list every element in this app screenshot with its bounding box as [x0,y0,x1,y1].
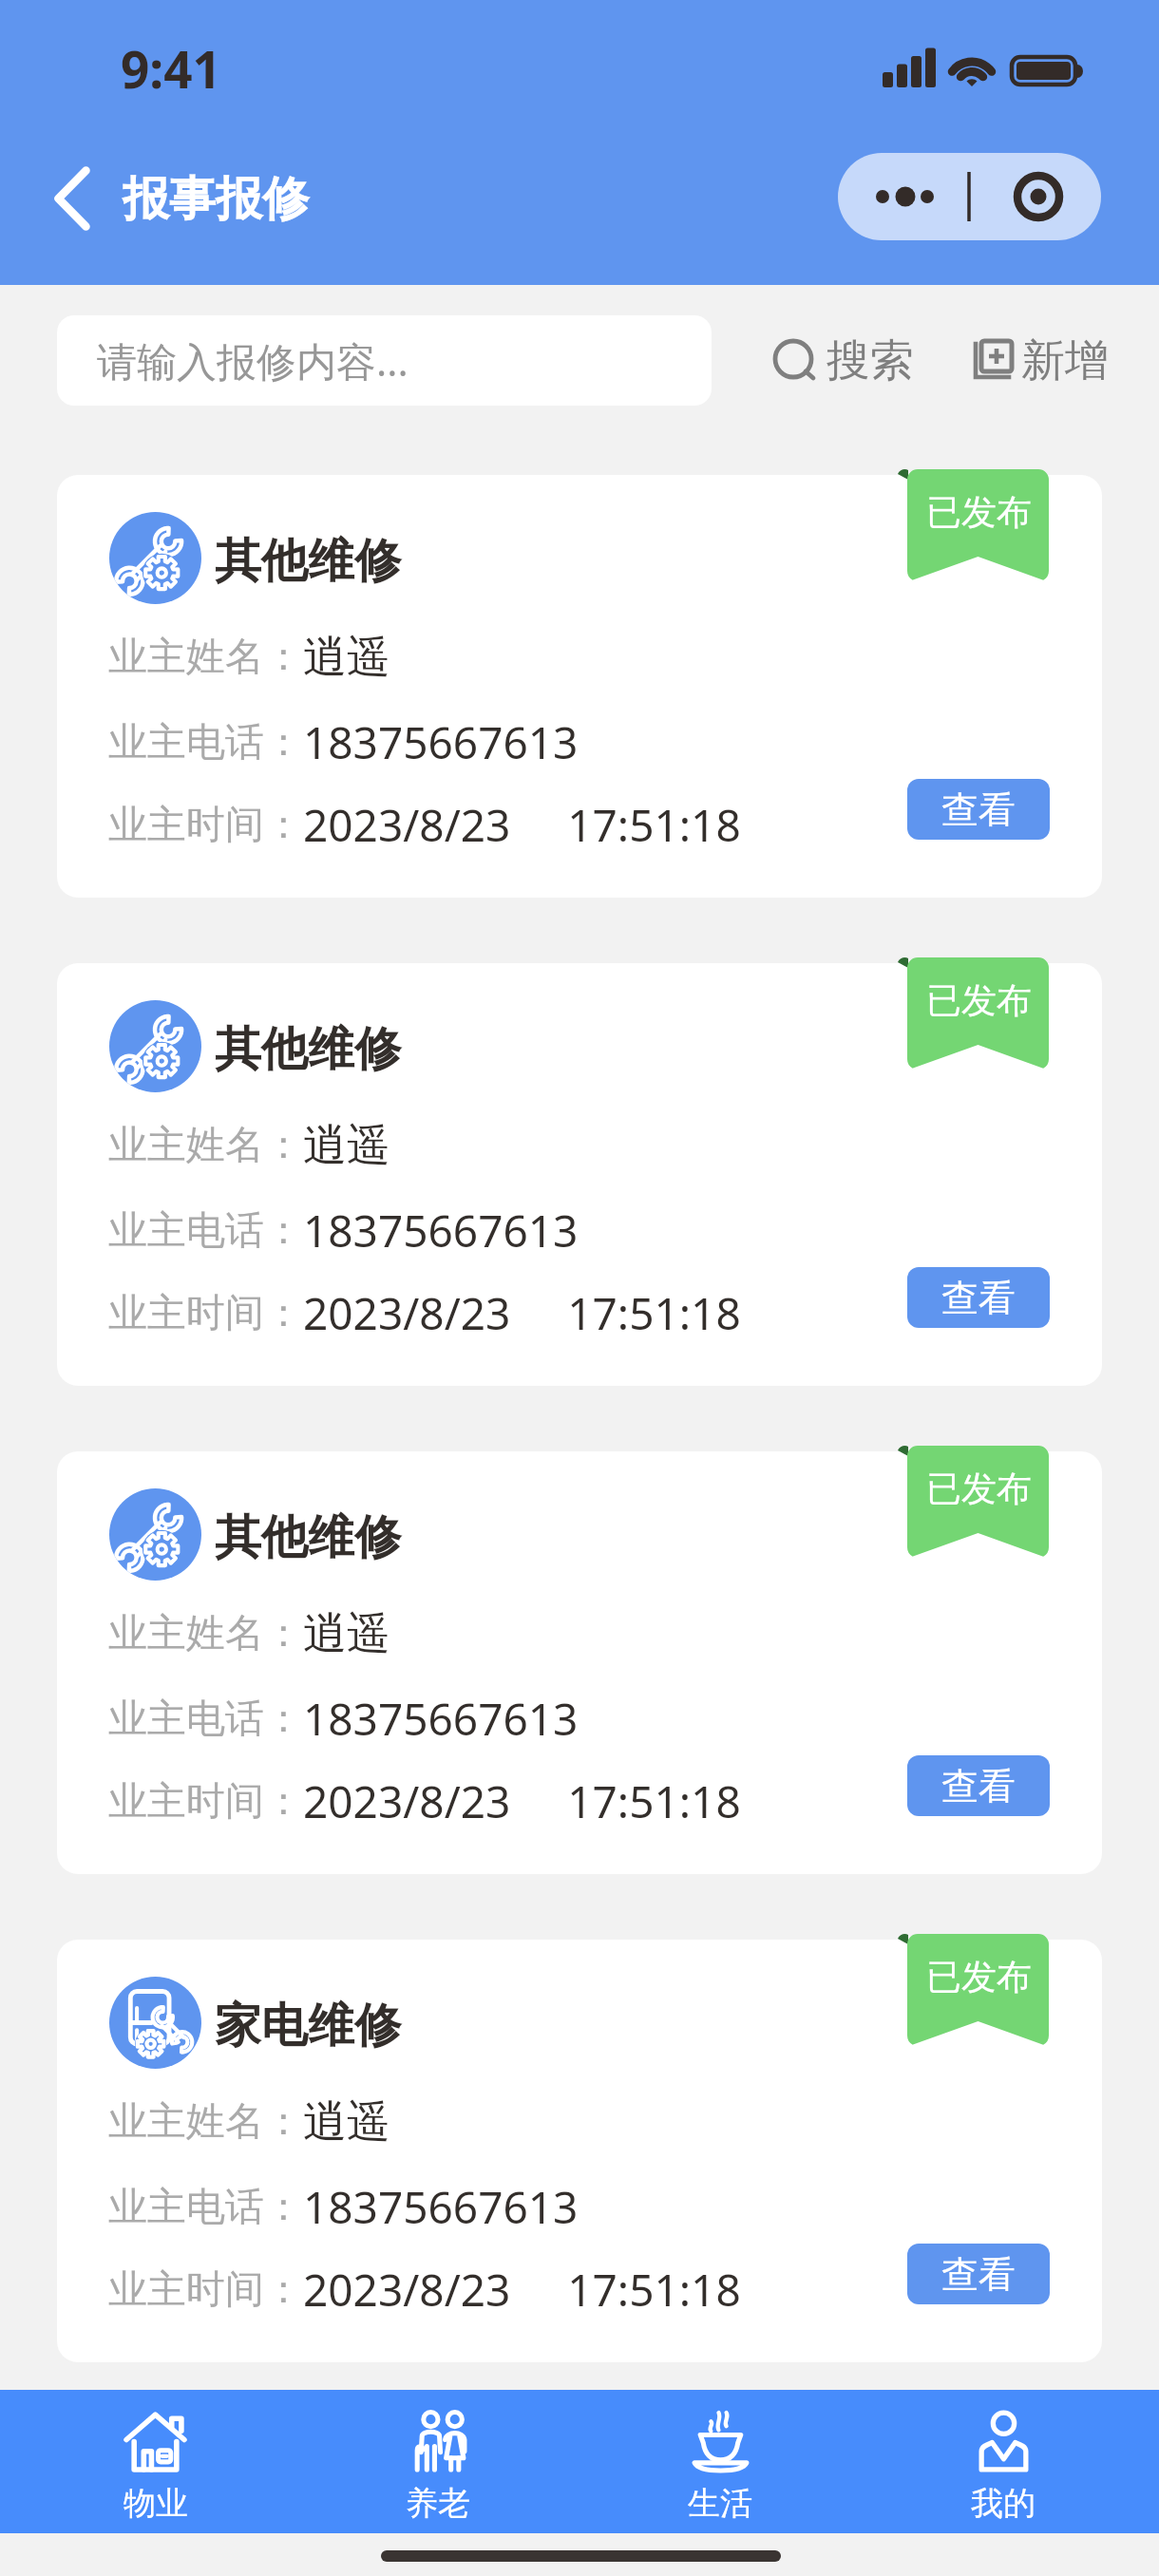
staticText: 物业 [123,2483,188,2524]
staticText: 18375667613 [303,712,579,772]
staticText: 查看 [941,786,1016,833]
button[interactable]: 新增 [968,327,1109,395]
staticText: 业主姓名： [108,633,303,682]
staticText: 业主姓名： [108,2097,303,2147]
staticText: 养老 [406,2483,470,2524]
button[interactable]: 家电维修 [57,1940,1102,2362]
button[interactable]: 其他维修 [57,963,1102,1386]
staticText: 家电维修 [215,1997,401,2055]
button[interactable]: Back [34,148,110,249]
staticText: 已发布 [926,490,1032,535]
staticText: 业主姓名： [108,1121,303,1170]
staticText: 查看 [941,2251,1016,2298]
staticText: 查看 [941,1275,1016,1321]
staticText: 9:41 [121,34,221,103]
staticText: 逍遥 [303,1606,390,1661]
button[interactable]: 养老 [296,2390,579,2533]
staticText: 18375667613 [303,2177,579,2237]
staticText: 业主时间： [108,1777,303,1827]
staticText: 18375667613 [303,1201,579,1260]
staticText: 报事报修 [123,170,309,229]
staticText: 其他维修 [215,1508,401,1567]
staticText: 逍遥 [303,630,390,685]
staticText: 业主时间： [108,1289,303,1338]
staticText: 其他维修 [215,532,401,591]
staticText: 已发布 [926,1955,1032,1999]
staticText: 业主电话： [108,2183,303,2232]
button[interactable]: 其他维修 [57,475,1102,898]
staticText: 业主时间： [108,2265,303,2315]
staticText: 业主电话： [108,1695,303,1744]
staticText: 查看 [941,1763,1016,1809]
staticText: 业主电话： [108,1206,303,1256]
staticText: 已发布 [926,1467,1032,1511]
staticText: 搜索 [826,333,914,388]
staticText: 新增 [1021,333,1109,388]
staticText: 2023/8/23 17:51:18 [303,2260,741,2320]
staticText: 我的 [971,2483,1035,2524]
button[interactable]: 搜索 [773,327,914,395]
button[interactable]: 生活 [579,2390,862,2533]
staticText: 逍遥 [303,2094,390,2150]
staticText: 业主电话： [108,718,303,767]
staticText: 其他维修 [215,1020,401,1079]
staticText: 2023/8/23 17:51:18 [303,1283,741,1343]
button[interactable]: More options and close [838,153,1101,240]
button[interactable]: 我的 [862,2390,1145,2533]
button[interactable]: 物业 [14,2390,296,2533]
button[interactable]: 查看 [907,2244,1050,2304]
staticText: 已发布 [926,978,1032,1023]
staticText: 请输入报修内容... [97,333,408,388]
button[interactable]: 请输入报修内容... [57,315,712,406]
button[interactable]: 其他维修 [57,1451,1102,1874]
button[interactable]: 查看 [907,779,1050,840]
staticText: 2023/8/23 17:51:18 [303,1771,741,1831]
staticText: 业主时间： [108,801,303,850]
button[interactable]: 查看 [907,1267,1050,1328]
staticText: 2023/8/23 17:51:18 [303,795,741,855]
staticText: 18375667613 [303,1689,579,1749]
staticText: 业主姓名： [108,1609,303,1658]
staticText: 生活 [688,2483,752,2524]
button[interactable]: 查看 [907,1755,1050,1816]
staticText: 逍遥 [303,1118,390,1173]
